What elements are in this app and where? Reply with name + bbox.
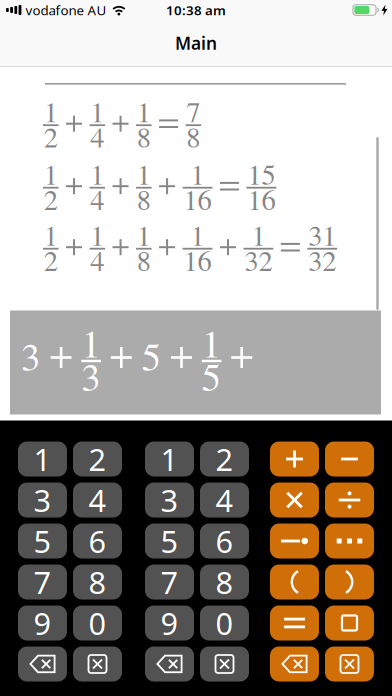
- staticText: 8: [186, 117, 200, 156]
- button[interactable]: Delete: [18, 646, 67, 681]
- staticText: 4: [90, 180, 104, 218]
- button[interactable]: 1: [18, 441, 67, 476]
- staticText: 16: [183, 180, 211, 218]
- staticText: 16: [183, 241, 211, 279]
- staticText: 1: [137, 92, 151, 130]
- staticText: 8: [137, 241, 151, 279]
- button[interactable]: 0: [73, 605, 122, 640]
- staticText: 1: [190, 154, 204, 193]
- staticText: 1: [137, 215, 151, 254]
- staticText: 4: [215, 480, 233, 520]
- staticText: 2: [215, 439, 233, 479]
- staticText: 7: [33, 562, 51, 602]
- staticText: 5: [160, 521, 178, 561]
- button[interactable]: Divide: [325, 482, 374, 517]
- staticText: 1: [190, 215, 204, 254]
- button[interactable]: Clear: [325, 646, 374, 681]
- staticText: 1: [90, 154, 104, 193]
- button[interactable]: 6: [73, 523, 122, 558]
- button[interactable]: 7: [145, 564, 194, 599]
- staticText: 1: [251, 215, 265, 254]
- button[interactable]: More: [325, 523, 374, 558]
- staticText: 8: [88, 562, 106, 602]
- staticText: 7: [186, 92, 200, 130]
- staticText: 4: [90, 117, 104, 156]
- button[interactable]: 3: [145, 482, 194, 517]
- button[interactable]: 2: [200, 441, 249, 476]
- button[interactable]: 1: [145, 441, 194, 476]
- staticText: 2: [88, 439, 106, 479]
- staticText: 31: [308, 215, 336, 254]
- button[interactable]: 8: [73, 564, 122, 599]
- staticText: 1: [160, 439, 178, 479]
- staticText: 2: [44, 241, 58, 279]
- button[interactable]: 5: [145, 523, 194, 558]
- staticText: 2: [44, 117, 58, 156]
- staticText: 8: [137, 117, 151, 156]
- button[interactable]: 3: [18, 482, 67, 517]
- button[interactable]: Open bracket: [270, 564, 319, 599]
- button[interactable]: Clear: [73, 646, 122, 681]
- button[interactable]: 9: [145, 605, 194, 640]
- staticText: 9: [160, 603, 178, 643]
- button[interactable]: Multiply: [270, 482, 319, 517]
- staticText: 32: [308, 241, 336, 279]
- staticText: Main: [175, 31, 217, 54]
- staticText: 1: [202, 316, 222, 369]
- staticText: 3: [160, 480, 178, 520]
- button[interactable]: Delete: [270, 646, 319, 681]
- button[interactable]: Minus: [325, 441, 374, 476]
- staticText: 15: [247, 154, 275, 193]
- staticText: 1: [44, 215, 58, 254]
- staticText: 3: [21, 329, 41, 382]
- staticText: 1: [81, 316, 101, 369]
- staticText: 5: [202, 349, 222, 402]
- staticText: 1: [44, 154, 58, 193]
- staticText: 1: [137, 154, 151, 193]
- staticText: 1: [90, 92, 104, 130]
- button[interactable]: 4: [73, 482, 122, 517]
- staticText: 4: [90, 241, 104, 279]
- staticText: 6: [215, 521, 233, 561]
- staticText: 3: [33, 480, 51, 520]
- staticText: 6: [88, 521, 106, 561]
- button[interactable]: Close bracket: [325, 564, 374, 599]
- button[interactable]: 5: [18, 523, 67, 558]
- staticText: 0: [215, 603, 233, 643]
- staticText: 4: [88, 480, 106, 520]
- button[interactable]: Plus: [270, 441, 319, 476]
- button[interactable]: 7: [18, 564, 67, 599]
- button[interactable]: Delete: [145, 646, 194, 681]
- staticText: 8: [137, 180, 151, 218]
- button[interactable]: 9: [18, 605, 67, 640]
- staticText: vodafone AU: [25, 1, 106, 19]
- staticText: 16: [247, 180, 275, 218]
- staticText: 5: [33, 521, 51, 561]
- staticText: 5: [141, 329, 161, 382]
- staticText: 10:38 am: [166, 1, 226, 19]
- button[interactable]: Equals: [270, 605, 319, 640]
- staticText: 1: [90, 215, 104, 254]
- button[interactable]: 2: [73, 441, 122, 476]
- button[interactable]: Fraction bar: [270, 523, 319, 558]
- button[interactable]: Clear: [200, 646, 249, 681]
- staticText: 9: [33, 603, 51, 643]
- staticText: 1: [33, 439, 51, 479]
- button[interactable]: 8: [200, 564, 249, 599]
- button[interactable]: Placeholder: [325, 605, 374, 640]
- staticText: 1: [44, 92, 58, 130]
- button[interactable]: 6: [200, 523, 249, 558]
- staticText: 3: [81, 349, 101, 402]
- button[interactable]: 4: [200, 482, 249, 517]
- staticText: 32: [244, 241, 272, 279]
- button[interactable]: 0: [200, 605, 249, 640]
- staticText: 0: [88, 603, 106, 643]
- staticText: 7: [160, 562, 178, 602]
- staticText: 2: [44, 180, 58, 218]
- staticText: 8: [215, 562, 233, 602]
